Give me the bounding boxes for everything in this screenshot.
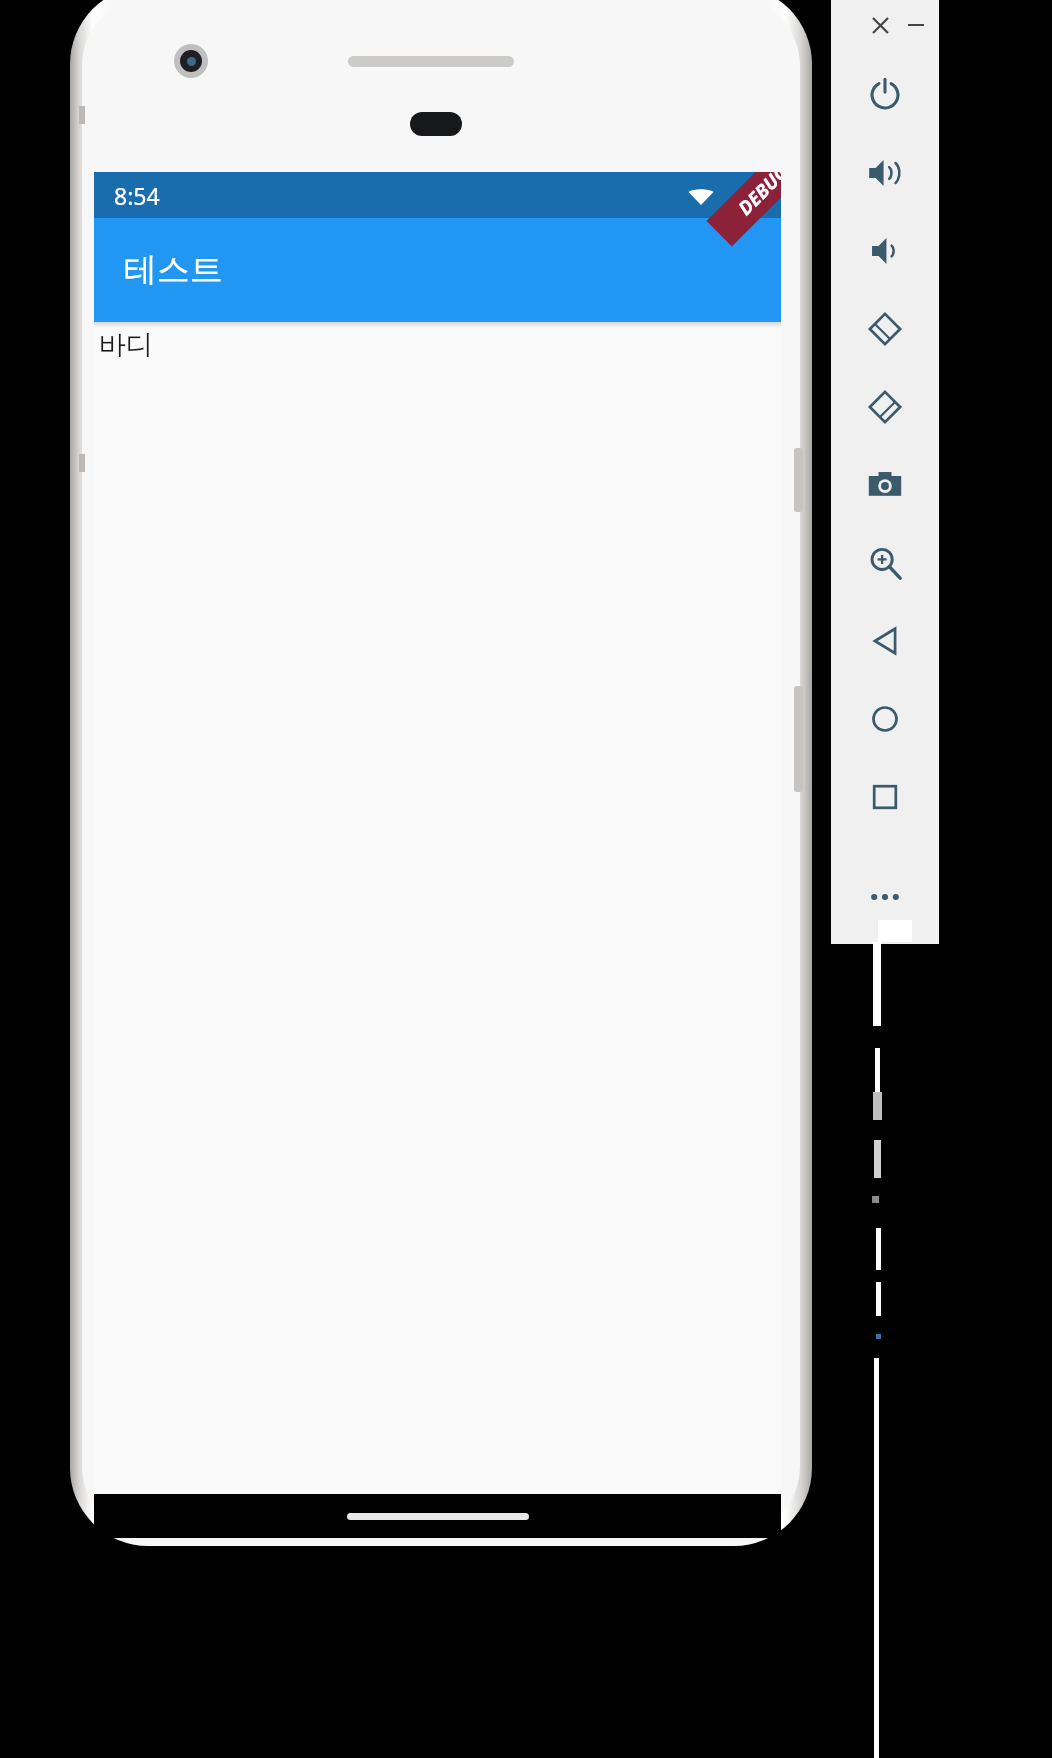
button[interactable]: Zoom	[831, 524, 939, 602]
button[interactable]: Minimize	[901, 10, 931, 40]
button[interactable]: Screenshot	[831, 446, 939, 524]
staticText: 테스트	[124, 249, 223, 291]
button[interactable]: Overview	[831, 758, 939, 836]
button[interactable]: Home	[347, 1513, 529, 1520]
staticText: 8:54	[114, 180, 160, 211]
staticText: DEBUG	[732, 172, 781, 221]
button[interactable]: Volume down	[831, 212, 939, 290]
button[interactable]: More	[831, 858, 939, 936]
button[interactable]: Back	[831, 602, 939, 680]
button[interactable]: Power	[831, 56, 939, 134]
button[interactable]: Home	[831, 680, 939, 758]
button[interactable]: 테스트	[94, 218, 781, 322]
button[interactable]: Rotate left	[831, 290, 939, 368]
button[interactable]: Rotate right	[831, 368, 939, 446]
button[interactable]: Close	[865, 10, 895, 40]
staticText: 바디	[99, 328, 153, 362]
button[interactable]: Volume up	[831, 134, 939, 212]
